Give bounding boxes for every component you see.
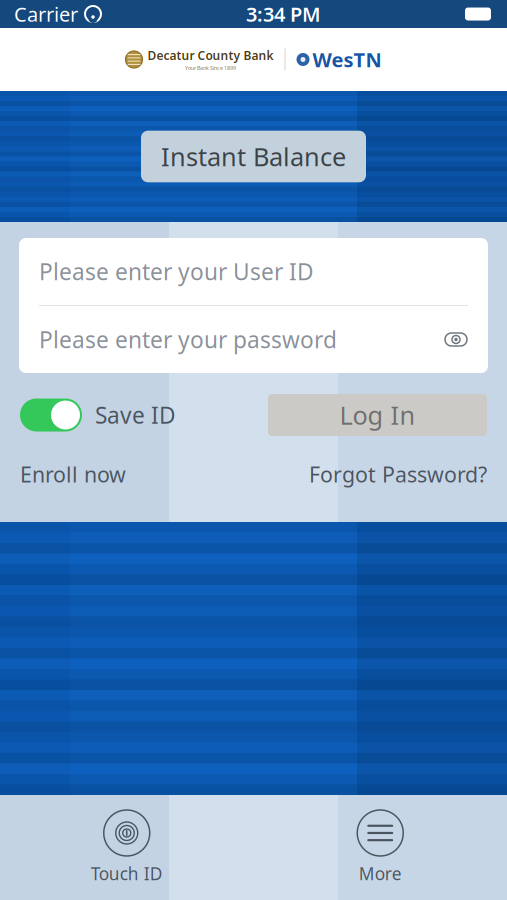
button[interactable]: Save ID: [20, 398, 176, 431]
staticText: Your Bank Since 1899: [185, 64, 236, 71]
button[interactable]: Log In: [268, 394, 487, 436]
staticText: More: [359, 862, 402, 885]
staticText: Please enter your User ID: [39, 256, 314, 286]
button[interactable]: Forgot Password?: [309, 460, 487, 488]
staticText: Save ID: [95, 400, 176, 430]
button[interactable]: More: [325, 807, 435, 887]
staticText: Forgot Password?: [309, 460, 487, 488]
button[interactable]: Instant Balance: [141, 131, 366, 182]
button[interactable]: Please enter your password: [19, 306, 488, 373]
staticText: Instant Balance: [161, 140, 346, 173]
staticText: Carrier: [14, 1, 78, 27]
button[interactable]: Please enter your User ID: [19, 238, 488, 305]
button[interactable]: Touch ID: [72, 807, 182, 887]
staticText: 3:34 PM: [246, 1, 321, 27]
staticText: Decatur County Bank: [147, 47, 273, 63]
staticText: WesTN: [312, 46, 381, 73]
button[interactable]: Enroll now: [20, 460, 126, 488]
staticText: Log In: [339, 398, 415, 432]
staticText: Touch ID: [91, 862, 163, 885]
staticText: Enroll now: [20, 460, 126, 488]
staticText: Please enter your password: [39, 324, 337, 354]
